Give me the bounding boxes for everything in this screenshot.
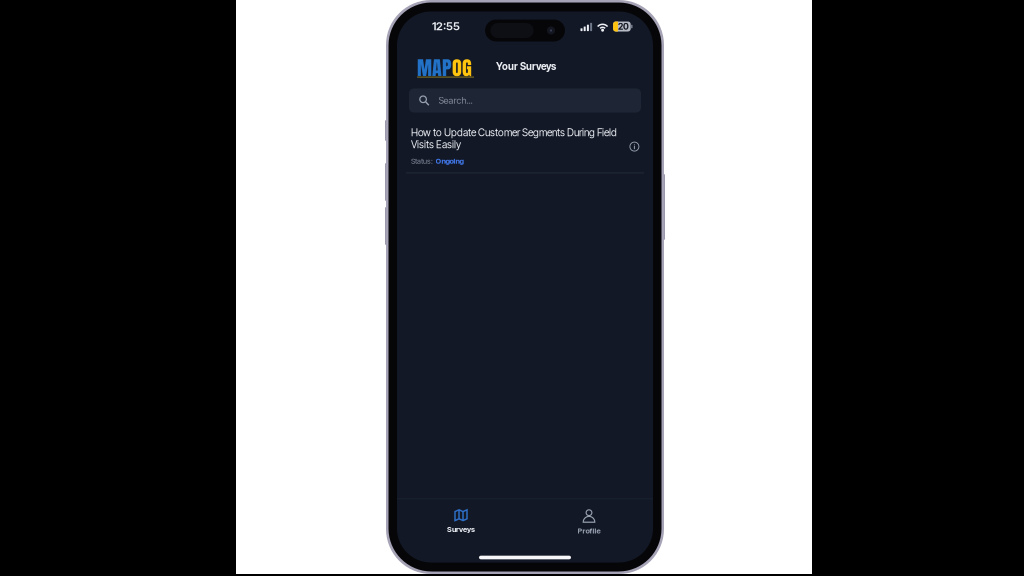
staticText: Ongoing — [436, 156, 464, 165]
staticText: Visits Easily — [411, 138, 461, 151]
staticText: 12:55 — [432, 19, 460, 33]
staticText: Surveys — [447, 525, 475, 534]
staticText: MAP — [417, 52, 452, 83]
button[interactable]: Profile — [525, 499, 653, 533]
button[interactable]: How to Update Customer Segments During F… — [397, 115, 653, 172]
staticText: Profile — [577, 526, 600, 535]
staticText: Your Surveys — [496, 60, 556, 72]
staticText: How to Update Customer Segments During F… — [411, 126, 617, 139]
staticText: Status: — [411, 156, 433, 165]
button[interactable]: Search — [409, 88, 641, 112]
staticText: OG — [452, 52, 472, 83]
staticText: 20 — [618, 21, 629, 32]
button[interactable]: MAPOG — [397, 44, 480, 84]
staticText: Search... — [439, 95, 473, 106]
button[interactable]: Surveys — [397, 499, 525, 533]
